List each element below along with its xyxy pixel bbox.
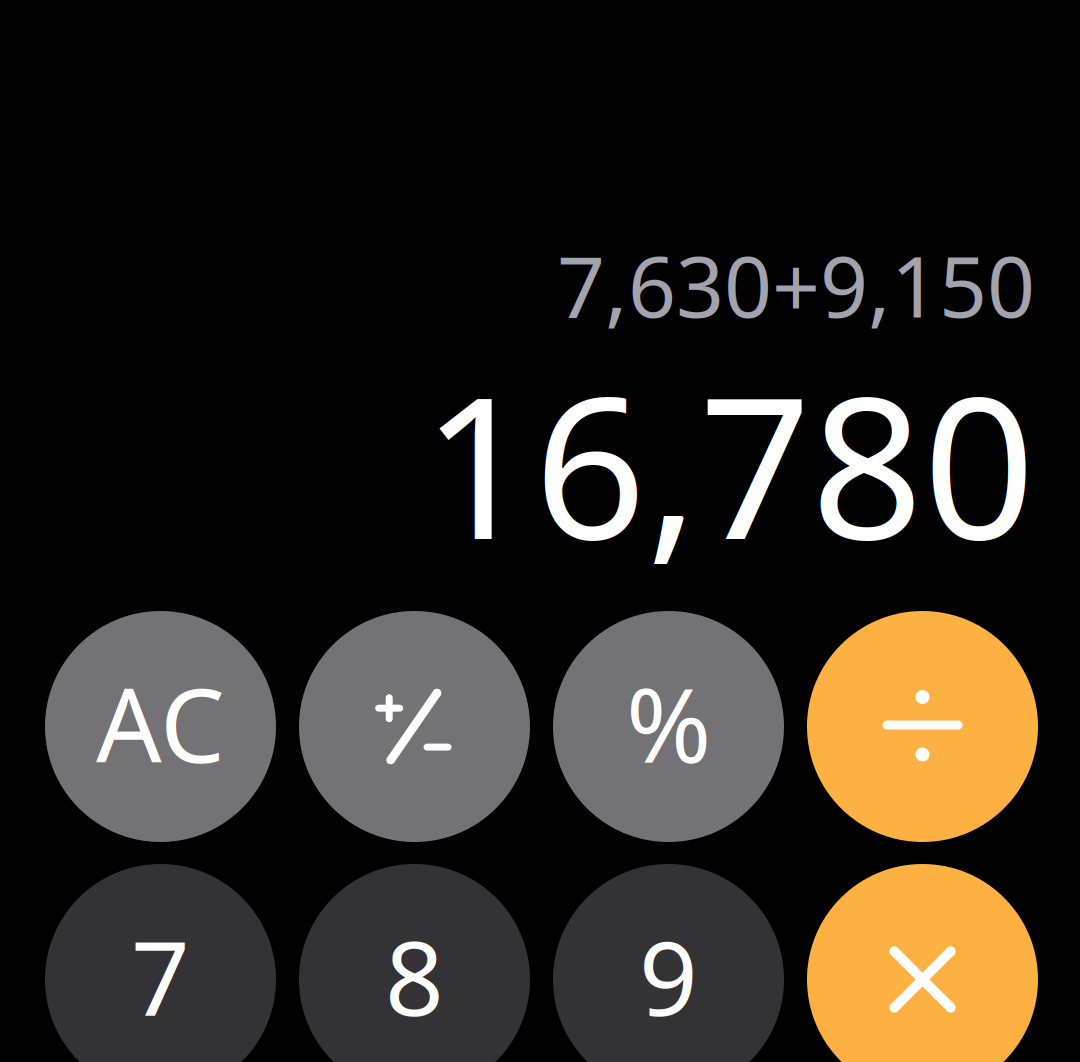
staticText: 7,630+9,150 [557, 229, 1035, 341]
button[interactable]: Plus Minus [299, 611, 530, 842]
button[interactable]: % [553, 611, 784, 842]
staticText: AC [96, 655, 225, 791]
staticText: % [626, 655, 711, 791]
staticText: 7 [131, 908, 190, 1044]
button[interactable]: 9 [553, 864, 784, 1062]
staticText: 16,780 [422, 333, 1035, 593]
staticText: 8 [385, 908, 444, 1044]
button[interactable]: Multiply [807, 864, 1038, 1062]
button[interactable]: 7 [45, 864, 276, 1062]
button[interactable]: AC [45, 611, 276, 842]
staticText: 9 [639, 908, 698, 1044]
button[interactable]: Divide [807, 611, 1038, 842]
button[interactable]: 8 [299, 864, 530, 1062]
